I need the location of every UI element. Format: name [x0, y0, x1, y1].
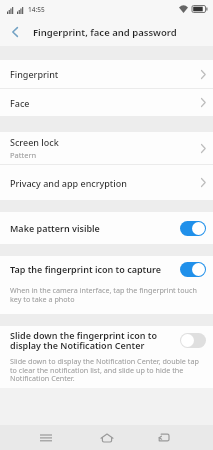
button[interactable] [31, 425, 61, 450]
button[interactable]: Tap the fingerprint icon to capture [0, 256, 213, 282]
staticText: Face [10, 97, 30, 109]
button[interactable] [180, 262, 206, 277]
button[interactable]: Face [0, 89, 213, 116]
button[interactable]: Make pattern visible [0, 212, 213, 244]
staticText: Make pattern visible [10, 222, 180, 234]
button[interactable] [0, 18, 30, 46]
staticText: Privacy and app encryption [10, 177, 127, 189]
staticText: Fingerprint [10, 68, 59, 80]
button[interactable] [92, 425, 122, 450]
button[interactable] [180, 221, 206, 236]
button[interactable] [180, 333, 206, 348]
staticText: Slide down the fingerprint icon to displ… [10, 329, 180, 352]
staticText: Fingerprint, face and password [33, 26, 177, 39]
staticText: Slide down to display the Notification C… [10, 356, 199, 383]
staticText: Screen lock [10, 136, 59, 148]
button[interactable]: Privacy and app encryption [0, 165, 213, 200]
button[interactable]: Slide down the fingerprint icon to displ… [0, 326, 213, 354]
button[interactable]: Screen lock [0, 132, 213, 164]
staticText: When in the camera interface, tap the fi… [10, 285, 197, 304]
staticText: Tap the fingerprint icon to capture [10, 263, 180, 275]
button[interactable]: Fingerprint [0, 60, 213, 88]
staticText: Pattern [10, 150, 37, 160]
staticText: 14:55 [28, 5, 45, 14]
button[interactable] [149, 425, 179, 450]
